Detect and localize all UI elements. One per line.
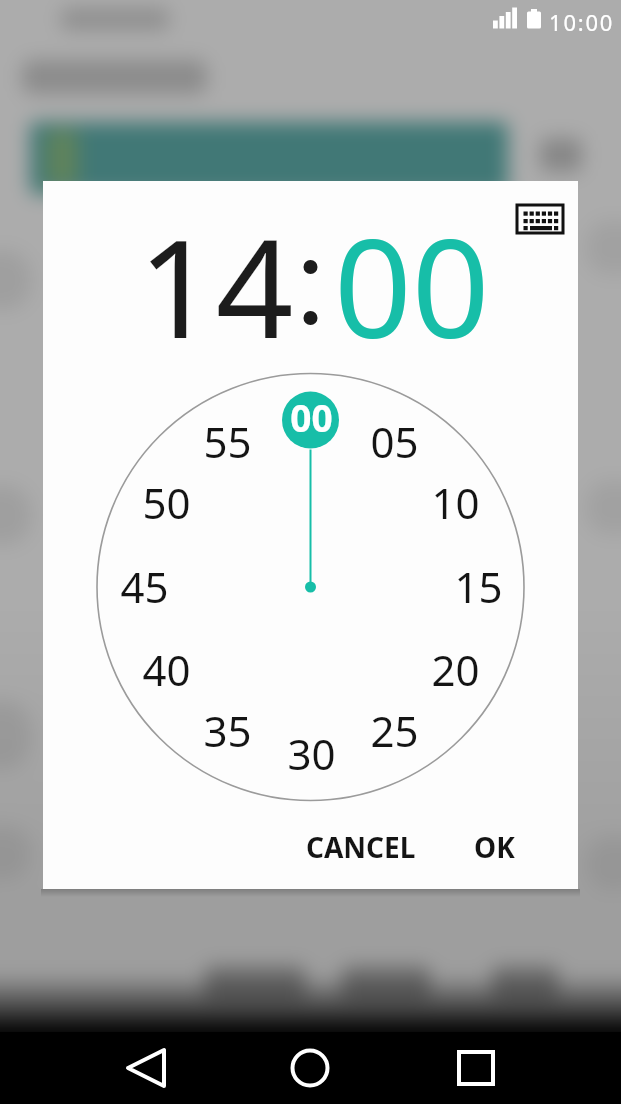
button[interactable] <box>436 1032 516 1104</box>
button[interactable] <box>270 1032 350 1104</box>
button[interactable]: OK <box>449 817 539 877</box>
staticText: 14 <box>138 193 294 378</box>
staticText: 50 <box>142 474 191 522</box>
staticText: 00 <box>334 193 490 378</box>
button[interactable] <box>106 1032 186 1104</box>
staticText: 35 <box>203 702 252 750</box>
button[interactable] <box>501 191 579 247</box>
staticText: CANCEL <box>306 828 416 866</box>
staticText: 15 <box>454 558 503 606</box>
staticText: 55 <box>203 413 252 461</box>
staticText: 45 <box>120 558 169 606</box>
staticText: 25 <box>370 702 419 750</box>
staticText: 05 <box>370 413 419 461</box>
button[interactable]: CANCEL <box>283 817 438 877</box>
staticText: 00 <box>290 392 333 438</box>
staticText: 30 <box>287 725 336 773</box>
staticText: 10:00 <box>549 7 615 37</box>
staticText: 40 <box>142 641 191 689</box>
staticText: OK <box>474 828 515 866</box>
staticText: 20 <box>431 641 480 689</box>
staticText: 10 <box>431 474 480 522</box>
